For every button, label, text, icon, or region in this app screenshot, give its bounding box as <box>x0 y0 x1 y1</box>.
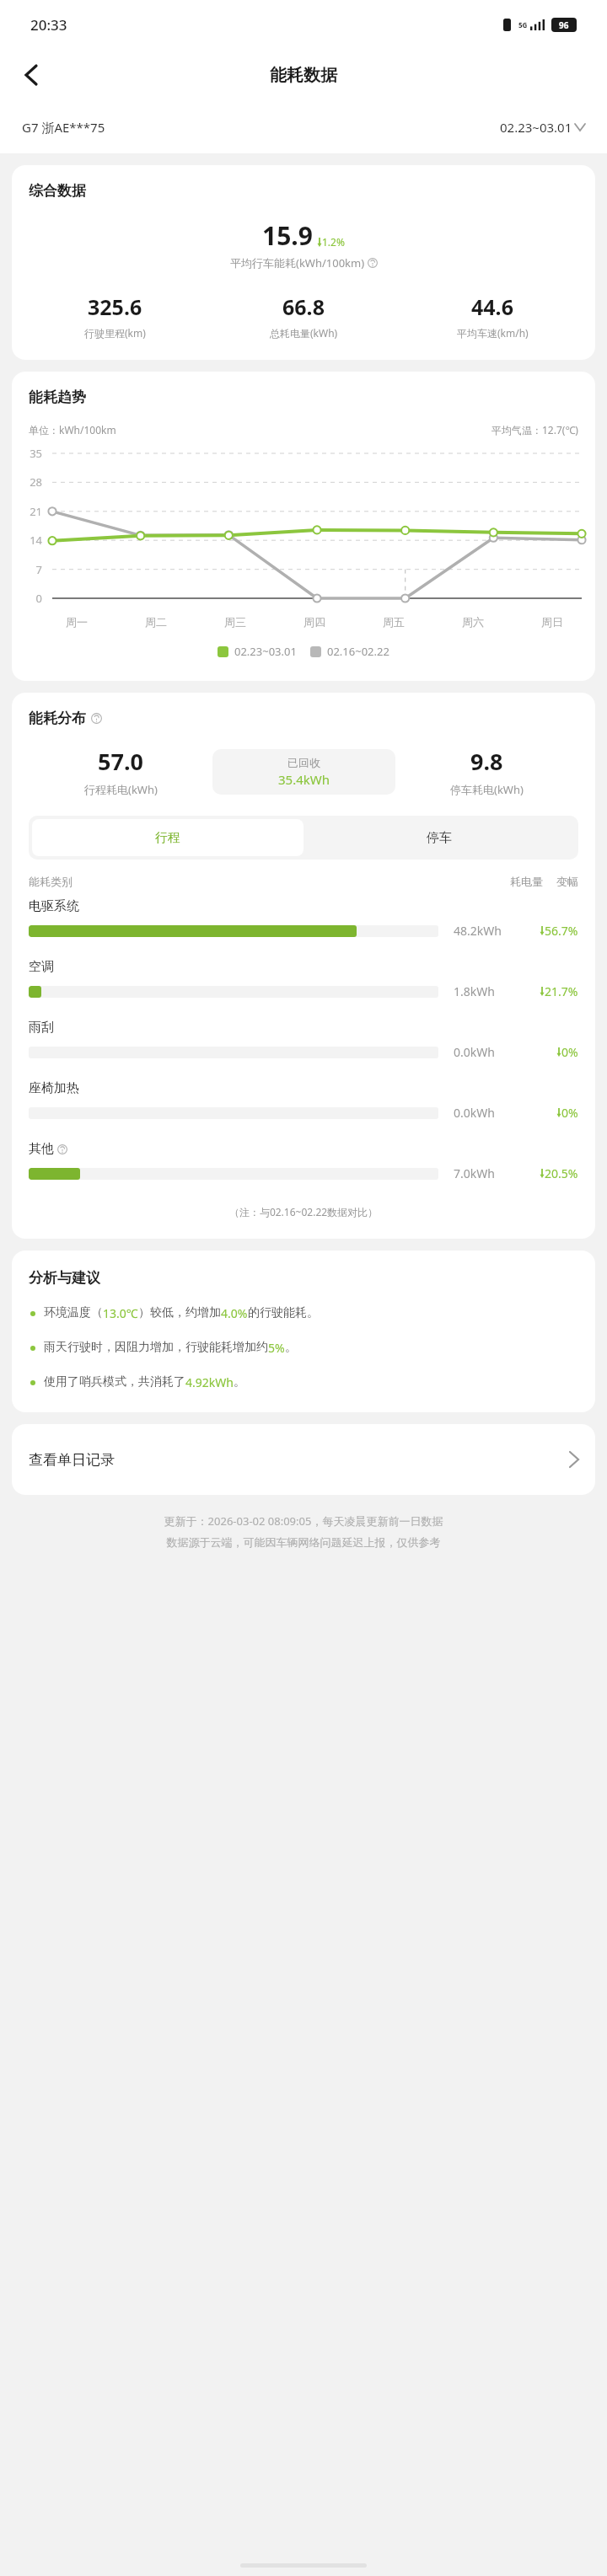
button[interactable]: 停车 <box>303 819 575 856</box>
staticText: 行驶里程(km) <box>84 326 146 340</box>
staticText: 35.4kWh <box>278 771 330 788</box>
staticText: 20.5% <box>545 1165 578 1181</box>
staticText: 66.8 <box>282 292 325 321</box>
staticText: 0.0kWh <box>454 1105 495 1121</box>
staticText: 15.9 <box>262 218 313 253</box>
staticText: 周四 <box>275 615 354 629</box>
staticText: 5G <box>518 20 528 29</box>
staticText: 13.0℃ <box>103 1305 138 1321</box>
staticText: 分析与建议 <box>29 1269 100 1287</box>
staticText: 96 <box>559 19 569 31</box>
staticText: 周一 <box>37 615 116 629</box>
staticText: 28 <box>12 474 42 490</box>
staticText: 48.2kWh <box>454 923 502 939</box>
staticText: 更新于：2026-03-02 08:09:05，每天凌晨更新前一日数据 <box>12 1513 595 1529</box>
staticText: 其他 <box>29 1141 54 1157</box>
staticText: 耗电量 <box>510 875 543 888</box>
staticText: 325.6 <box>88 292 142 321</box>
staticText: 14 <box>12 533 42 548</box>
other: Help <box>57 1144 67 1154</box>
staticText: 停车耗电(kWh) <box>450 782 524 797</box>
staticText: ）较低，约增加 <box>138 1305 221 1320</box>
staticText: 02.16~02.22 <box>327 644 389 659</box>
staticText: 数据源于云端，可能因车辆网络问题延迟上报，仅供参考 <box>12 1535 595 1549</box>
staticText: 7.0kWh <box>454 1165 495 1181</box>
staticText: 21.7% <box>545 983 578 999</box>
staticText: 。 <box>234 1374 245 1390</box>
staticText: 0.0kWh <box>454 1044 495 1060</box>
staticText: 0% <box>561 1105 578 1121</box>
staticText: 变幅 <box>556 875 578 888</box>
staticText: （注：与02.16~02.22数据对比） <box>12 1205 595 1218</box>
staticText: 。 <box>285 1340 297 1355</box>
staticText: 0 <box>12 591 42 606</box>
staticText: G7 浙AE***75 <box>22 119 105 136</box>
staticText: 02.23~03.01 <box>234 644 297 659</box>
staticText: 已回收 <box>287 756 320 769</box>
staticText: 56.7% <box>545 923 578 939</box>
staticText: 35 <box>12 446 42 461</box>
staticText: 雨刮 <box>29 1020 54 1036</box>
button[interactable]: 02.23~03.01 <box>500 119 585 136</box>
button[interactable]: 查看单日记录 <box>12 1424 595 1495</box>
staticText: 座椅加热 <box>29 1080 79 1096</box>
staticText: 1.2% <box>322 235 345 249</box>
staticText: 平均车速(km/h) <box>457 326 529 340</box>
staticText: 使用了哨兵模式，共消耗了 <box>44 1374 185 1390</box>
staticText: 能耗分布 <box>29 710 86 727</box>
staticText: 环境温度（ <box>44 1305 103 1320</box>
staticText: 周五 <box>354 615 433 629</box>
button[interactable]: Back <box>12 56 51 94</box>
staticText: 总耗电量(kWh) <box>270 326 338 340</box>
staticText: 平均气温：12.7(℃) <box>492 423 578 436</box>
staticText: 21 <box>12 504 42 519</box>
staticText: 0% <box>561 1044 578 1060</box>
staticText: 周三 <box>196 615 275 629</box>
other: Help <box>368 258 378 268</box>
staticText: 9.8 <box>470 746 503 777</box>
staticText: 57.0 <box>98 746 143 777</box>
staticText: 能耗类别 <box>29 875 73 888</box>
staticText: 综合数据 <box>29 182 86 200</box>
staticText: 行程 <box>155 830 180 846</box>
staticText: 查看单日记录 <box>29 1451 115 1469</box>
staticText: 停车 <box>427 830 452 846</box>
staticText: 20:33 <box>30 15 67 35</box>
staticText: 周二 <box>116 615 196 629</box>
button[interactable]: 行程 <box>32 819 303 856</box>
staticText: 周日 <box>513 615 592 629</box>
staticText: 单位：kWh/100km <box>29 423 116 436</box>
staticText: 4.0% <box>221 1305 248 1321</box>
staticText: 44.6 <box>471 292 513 321</box>
staticText: 5% <box>268 1340 285 1356</box>
staticText: 平均行车能耗(kWh/100km) <box>230 255 365 270</box>
staticText: 7 <box>12 562 42 577</box>
staticText: 能耗趋势 <box>29 388 86 406</box>
staticText: 电驱系统 <box>29 898 79 914</box>
staticText: 雨天行驶时，因阻力增加，行驶能耗增加约 <box>44 1340 268 1355</box>
staticText: 的行驶能耗。 <box>248 1305 319 1320</box>
staticText: 1.8kWh <box>454 983 495 999</box>
other: Help <box>91 713 102 724</box>
staticText: 行程耗电(kWh) <box>84 782 158 797</box>
staticText: 能耗数据 <box>270 65 337 86</box>
staticText: 空调 <box>29 959 54 975</box>
staticText: 4.92kWh <box>185 1374 234 1390</box>
staticText: 周六 <box>433 615 513 629</box>
staticText: 02.23~03.01 <box>500 119 572 136</box>
